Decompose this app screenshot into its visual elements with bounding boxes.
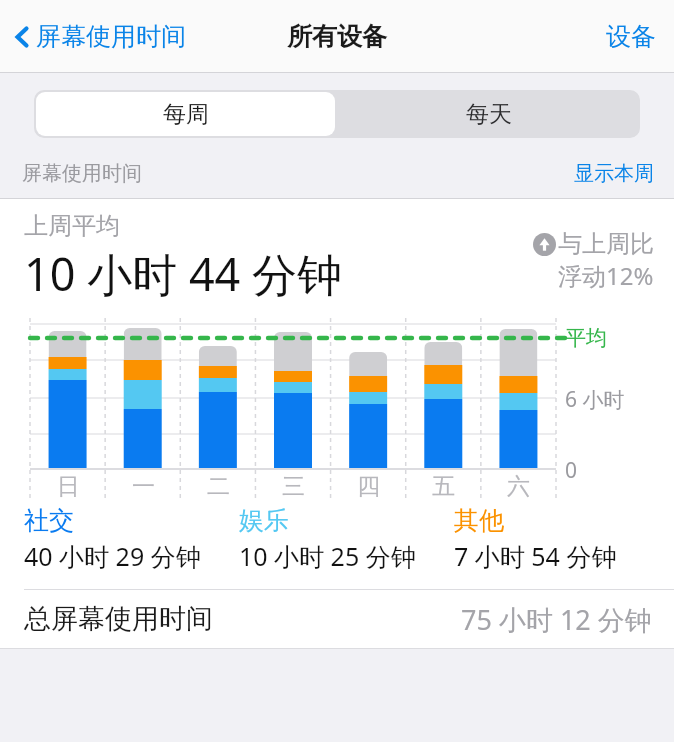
button[interactable]: 其他 (454, 505, 658, 573)
staticText: 上周平均 (24, 211, 120, 241)
staticText: 设备 (606, 21, 656, 52)
staticText: 四 (357, 472, 380, 501)
staticText: 五 (432, 472, 455, 501)
staticText: 娱乐 (239, 505, 289, 536)
staticText: 日 (57, 472, 80, 501)
staticText: 6 小时 (565, 385, 625, 414)
staticText: 10 小时 25 分钟 (239, 539, 416, 573)
staticText: 0 (565, 456, 578, 485)
button[interactable]: 每周 (36, 92, 335, 136)
staticText: 显示本周 (574, 161, 654, 186)
staticText: 每天 (466, 100, 512, 129)
button[interactable]: 总屏幕使用时间 (0, 590, 674, 648)
staticText: 浮动12% (558, 259, 654, 292)
staticText: 一 (132, 472, 155, 501)
staticText: 40 小时 29 分钟 (24, 539, 201, 573)
staticText: 其他 (454, 505, 504, 536)
staticText: 7 小时 54 分钟 (454, 539, 617, 573)
staticText: 社交 (24, 505, 74, 536)
staticText: 与上周比 (558, 229, 654, 259)
staticText: 所有设备 (287, 21, 387, 52)
staticText: 75 小时 12 分钟 (461, 601, 652, 638)
staticText: 屏幕使用时间 (22, 161, 142, 186)
button[interactable]: 显示本周 (574, 161, 654, 186)
button[interactable]: 屏幕使用时间 (10, 15, 190, 58)
staticText: 三 (282, 472, 305, 501)
staticText: 每周 (163, 100, 209, 129)
button[interactable]: 娱乐 (239, 505, 454, 573)
staticText: 平均 (565, 325, 607, 351)
staticText: 总屏幕使用时间 (24, 602, 213, 636)
button[interactable]: 社交 (24, 505, 239, 573)
staticText: 二 (207, 472, 230, 501)
button[interactable]: 设备 (602, 15, 660, 58)
staticText: 10 小时 44 分钟 (24, 243, 343, 304)
staticText: 六 (507, 472, 530, 501)
staticText: 屏幕使用时间 (36, 21, 186, 52)
button[interactable]: 每天 (337, 90, 640, 138)
